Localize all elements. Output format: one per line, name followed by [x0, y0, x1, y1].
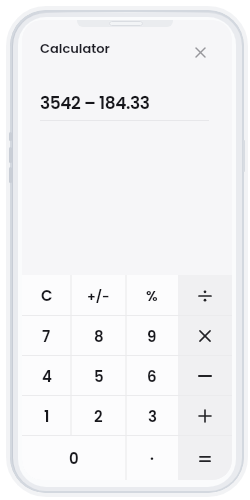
staticText: 9	[147, 326, 157, 347]
staticText: 3542 – 184.33	[40, 91, 150, 115]
button[interactable]: 1	[22, 396, 71, 436]
staticText: 4	[42, 366, 52, 387]
staticText: 8	[94, 326, 104, 347]
button[interactable]: 4	[22, 356, 71, 396]
button[interactable]	[178, 396, 232, 436]
staticText: 2	[94, 406, 103, 427]
button[interactable]: 6	[126, 356, 178, 396]
button[interactable]: 8	[71, 316, 126, 356]
staticText: 1	[44, 406, 50, 427]
button[interactable]	[178, 316, 232, 356]
button[interactable]	[178, 356, 232, 396]
button[interactable]	[192, 44, 208, 60]
button[interactable]: C	[22, 275, 71, 316]
button[interactable]	[178, 275, 232, 316]
staticText: 5	[94, 366, 104, 387]
button[interactable]	[178, 436, 232, 481]
staticText: .	[150, 444, 154, 465]
staticText: C	[41, 285, 53, 306]
staticText: +/-	[87, 287, 110, 305]
button[interactable]: 9	[126, 316, 178, 356]
staticText: 6	[147, 366, 157, 387]
staticText: 7	[42, 326, 51, 347]
button[interactable]: +/-	[71, 275, 126, 316]
button[interactable]: 3	[126, 396, 178, 436]
staticText: 3	[148, 406, 157, 427]
button[interactable]: %	[126, 275, 178, 316]
button[interactable]: 7	[22, 316, 71, 356]
button[interactable]: .	[126, 436, 178, 481]
button[interactable]: 5	[71, 356, 126, 396]
button[interactable]: 2	[71, 396, 126, 436]
staticText: %	[146, 286, 158, 306]
staticText: 0	[69, 448, 79, 469]
staticText: Calculator	[40, 39, 110, 57]
button[interactable]: 0	[22, 436, 126, 481]
